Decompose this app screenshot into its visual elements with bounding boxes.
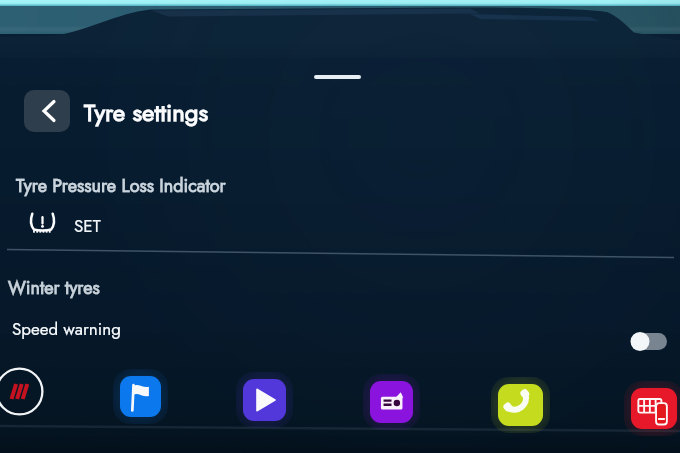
other: Tyre pressure warning [30,211,55,236]
button[interactable]: Navigation [120,376,161,417]
staticText: Tyre settings [84,95,209,130]
staticText: Speed warning [12,317,121,342]
button[interactable]: Apps [631,388,677,429]
staticText: Tyre Pressure Loss Indicator [16,173,226,199]
button[interactable]: Back [24,90,70,132]
button[interactable]: SET [74,214,101,239]
button[interactable]: Radio [370,381,413,423]
staticText: Winter tyres [8,275,100,301]
button[interactable]: Phone [498,384,543,426]
button[interactable]: Speed warning [0,312,680,356]
button[interactable]: Home [0,367,44,416]
button[interactable]: Media [243,379,286,421]
